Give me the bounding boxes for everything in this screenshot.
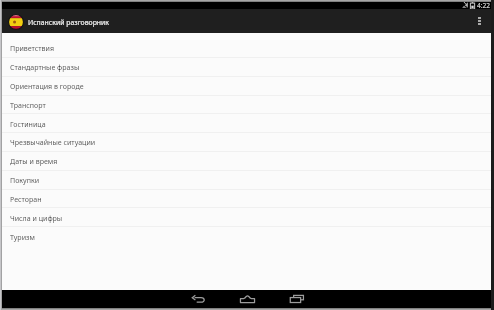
staticText: Даты и время: [10, 156, 58, 166]
button[interactable]: Туризм: [2, 227, 491, 246]
staticText: Ресторан: [10, 194, 42, 204]
button[interactable]: Транспорт: [2, 95, 491, 114]
button[interactable]: Даты и время: [2, 151, 491, 170]
staticText: Чрезвычайные ситуации: [10, 137, 96, 147]
button[interactable]: Home: [234, 290, 260, 308]
button[interactable]: App icon: [8, 14, 24, 30]
staticText: Гостиница: [10, 119, 46, 129]
button[interactable]: Стандартные фразы: [2, 57, 491, 76]
button[interactable]: Числа и цифры: [2, 208, 491, 227]
staticText: 4:22: [477, 1, 491, 8]
staticText: Ориентация в городе: [10, 81, 84, 91]
staticText: Туризм: [10, 232, 35, 242]
button[interactable]: Чрезвычайные ситуации: [2, 132, 491, 151]
button[interactable]: Гостиница: [2, 114, 491, 133]
staticText: Стандартные фразы: [10, 62, 80, 72]
button[interactable]: Recent apps: [285, 290, 309, 308]
button[interactable]: Back: [186, 290, 210, 308]
button[interactable]: Ресторан: [2, 189, 491, 208]
button[interactable]: Ориентация в городе: [2, 76, 491, 95]
staticText: Испанский разговорник: [28, 18, 110, 27]
button[interactable]: Покупки: [2, 170, 491, 189]
staticText: Покупки: [10, 175, 40, 185]
staticText: Приветствия: [10, 43, 54, 53]
button[interactable]: More options: [469, 9, 490, 33]
button[interactable]: Приветствия: [2, 38, 491, 57]
staticText: Транспорт: [10, 100, 46, 110]
staticText: Числа и цифры: [10, 213, 63, 223]
